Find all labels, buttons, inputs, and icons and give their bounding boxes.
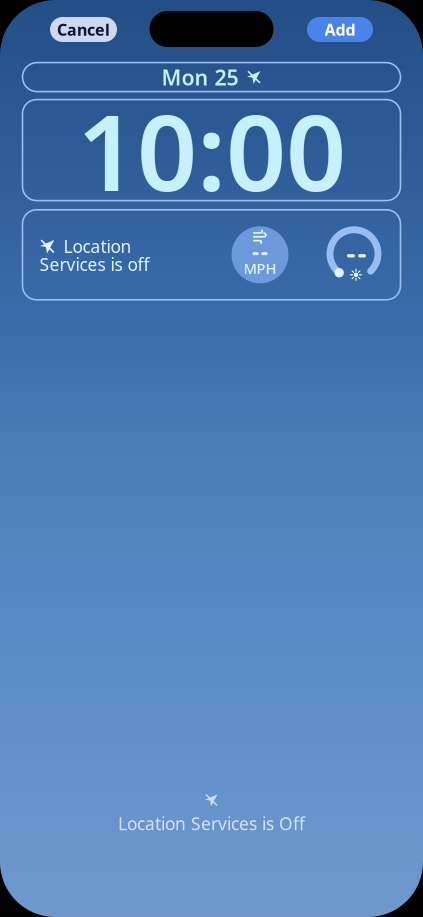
staticText: Add	[324, 19, 355, 40]
staticText: 10:00	[77, 80, 346, 220]
staticText: MPH	[243, 259, 276, 278]
button[interactable]: Add	[307, 17, 373, 42]
staticText: Mon 25	[161, 63, 238, 91]
staticText: Services is off	[39, 253, 149, 276]
staticText: Location	[63, 235, 131, 258]
staticText: Location Services is Off	[118, 812, 305, 835]
button[interactable]: Cancel	[50, 17, 117, 42]
staticText: Cancel	[57, 19, 110, 40]
